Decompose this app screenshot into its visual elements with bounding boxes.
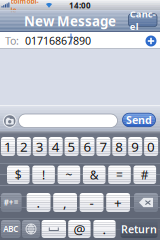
staticText: 9 <box>131 138 139 155</box>
button[interactable]: Attach photo <box>3 114 16 128</box>
staticText: ~ <box>65 167 72 183</box>
button[interactable]: 0 <box>144 137 158 156</box>
button[interactable]: . <box>27 193 50 212</box>
staticText: Cancel <box>130 8 156 33</box>
button[interactable]: $ <box>7 165 30 184</box>
staticText: New Message <box>24 12 116 30</box>
staticText: Return <box>121 222 157 236</box>
button[interactable]: Space <box>42 220 66 238</box>
button[interactable]: @ <box>68 220 91 238</box>
staticText: + <box>114 194 122 211</box>
staticText: ! <box>42 167 45 183</box>
staticText: = <box>116 167 123 183</box>
button[interactable]: 7 <box>96 137 110 156</box>
button[interactable]: 3 <box>33 137 47 156</box>
staticText: @ <box>73 220 85 238</box>
button[interactable]: 8 <box>112 137 126 156</box>
button[interactable]: 6 <box>80 137 94 156</box>
button[interactable]: - <box>80 193 103 212</box>
staticText: 8 <box>115 138 123 155</box>
staticText: 2 <box>20 138 28 155</box>
staticText: 4 <box>52 138 60 155</box>
staticText: $ <box>15 167 22 183</box>
staticText: 6 <box>83 138 91 155</box>
button[interactable]: 2 <box>17 137 31 156</box>
button[interactable]: , <box>53 193 77 212</box>
staticText: . <box>102 220 106 238</box>
staticText: 01716867890 <box>19 33 91 48</box>
button[interactable]: 5 <box>65 137 79 156</box>
button[interactable]: ABC <box>1 220 20 238</box>
staticText: ABC <box>3 224 18 234</box>
staticText: colmobile <box>10 0 38 14</box>
button[interactable]: Send <box>122 113 155 127</box>
button[interactable]: . <box>93 220 116 238</box>
button[interactable]: ! <box>32 165 55 184</box>
staticText: . <box>37 194 41 211</box>
staticText: 0 <box>147 138 155 155</box>
button[interactable]: # <box>133 165 156 184</box>
staticText: 14:00 <box>69 0 91 11</box>
staticText: & <box>90 167 99 183</box>
staticText: 1 <box>4 138 12 155</box>
button[interactable]: & <box>83 165 105 184</box>
staticText: 3 <box>36 138 44 155</box>
staticText: 7 <box>99 138 107 155</box>
button[interactable]: Return <box>121 220 158 238</box>
button[interactable]: Delete <box>134 193 158 212</box>
staticText: To: <box>5 33 19 48</box>
staticText: 5 <box>68 138 76 155</box>
button[interactable]: ~ <box>58 165 80 184</box>
staticText: - <box>90 194 94 211</box>
button[interactable]: #+= <box>1 193 22 212</box>
button[interactable]: = <box>108 165 131 184</box>
button[interactable]: 4 <box>49 137 63 156</box>
staticText: , <box>63 194 67 211</box>
button[interactable]: 9 <box>128 137 142 156</box>
staticText: Send <box>126 113 152 127</box>
staticText: #+= <box>4 197 19 208</box>
button[interactable]: + <box>106 193 130 212</box>
button[interactable]: Add contact <box>144 34 157 47</box>
button[interactable]: Next keyboard <box>22 220 40 238</box>
button[interactable]: Cancel <box>128 14 157 27</box>
button[interactable]: 1 <box>1 137 15 156</box>
staticText: # <box>141 167 149 183</box>
